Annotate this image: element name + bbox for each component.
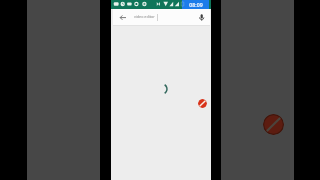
staticText: 08:09	[189, 1, 203, 8]
button[interactable]: Back	[113, 9, 210, 25]
button[interactable]: Stop screen recording	[198, 99, 207, 108]
button[interactable]: Stop screen recording	[263, 114, 284, 135]
button[interactable]: Back	[114, 10, 128, 24]
staticText: video editor	[134, 14, 155, 19]
button[interactable]: Voice search	[196, 11, 208, 23]
